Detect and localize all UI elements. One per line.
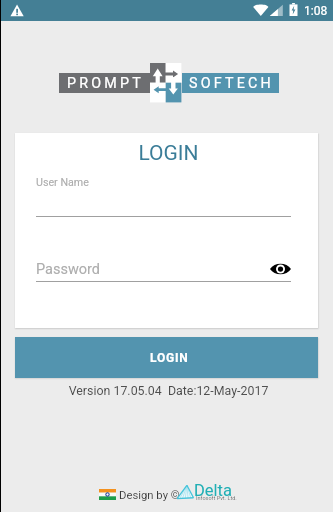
- staticText: Version 17.05.04 Date:12-May-2017: [2, 383, 333, 398]
- staticText: Delta: [194, 481, 232, 500]
- staticText: User Name: [36, 176, 89, 189]
- staticText: Design by ©: [119, 489, 180, 502]
- staticText: LOGIN: [150, 351, 189, 365]
- staticText: 1:08: [304, 4, 328, 18]
- staticText: SOFTECH: [189, 75, 274, 92]
- staticText: Password: [36, 261, 101, 278]
- staticText: PROMPT: [67, 75, 144, 92]
- staticText: LOGIN: [17, 141, 318, 166]
- button[interactable]: Show password: [268, 257, 292, 281]
- button[interactable]: LOGIN: [15, 337, 318, 378]
- staticText: Infosoft Pvt. Ltd.: [196, 495, 237, 501]
